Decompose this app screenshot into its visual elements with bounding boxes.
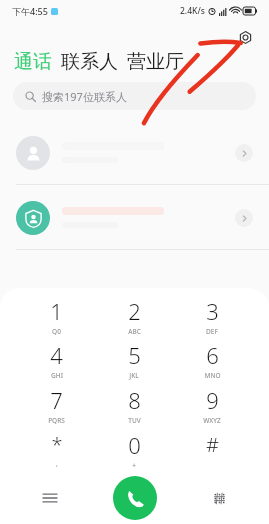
button[interactable]: Expand — [0, 185, 269, 250]
button[interactable]: 4 — [18, 338, 95, 382]
staticText: 联系人 — [61, 50, 118, 74]
button[interactable]: 0 — [95, 427, 173, 472]
staticText: 9 — [206, 385, 219, 415]
staticText: 搜索197位联系人 — [42, 89, 127, 104]
staticText: GHI — [51, 371, 63, 380]
staticText: 下午4:55 — [12, 5, 48, 17]
button[interactable]: 3 — [173, 294, 251, 338]
staticText: 4 — [50, 340, 63, 370]
button[interactable]: 9 — [173, 382, 251, 427]
button[interactable]: 通话 — [14, 48, 52, 76]
button[interactable]: 2 — [95, 294, 173, 338]
staticText: * — [51, 431, 63, 458]
button[interactable]: Keypad — [203, 482, 235, 514]
staticText: 2.4K/s — [180, 5, 205, 17]
button[interactable]: Menu — [34, 482, 66, 514]
staticText: 1 — [50, 296, 63, 326]
button[interactable]: # — [173, 427, 251, 472]
staticText: TUV — [128, 416, 141, 425]
button[interactable]: 8 — [95, 382, 173, 427]
staticText: , — [56, 459, 58, 468]
staticText: 通话 — [14, 50, 52, 74]
staticText: PQRS — [48, 416, 65, 425]
button[interactable]: Settings — [235, 27, 255, 47]
staticText: 3 — [206, 296, 219, 326]
button[interactable]: 6 — [173, 338, 251, 382]
staticText: 2 — [128, 296, 141, 326]
button[interactable]: Expand — [235, 144, 253, 162]
button[interactable]: * — [18, 427, 95, 472]
staticText: Q0 — [52, 327, 61, 336]
staticText: ABC — [128, 327, 141, 336]
staticText: 0 — [128, 430, 141, 460]
staticText: 8 — [128, 385, 141, 415]
staticText: JKL — [129, 371, 139, 380]
staticText: MNO — [204, 371, 221, 380]
staticText: + — [132, 461, 136, 470]
staticText: 7 — [50, 385, 63, 415]
staticText: 5 — [128, 340, 141, 370]
button[interactable]: 5 — [95, 338, 173, 382]
button[interactable]: Expand — [0, 120, 269, 185]
button[interactable]: 联系人 — [61, 48, 118, 76]
staticText: WXYZ — [203, 416, 221, 425]
button[interactable]: 营业厅 — [127, 48, 184, 76]
button[interactable]: Expand — [235, 209, 253, 227]
staticText: DEF — [206, 327, 218, 336]
button[interactable]: 1 — [18, 294, 95, 338]
button[interactable]: 搜索197位联系人 — [13, 82, 256, 110]
button[interactable]: 7 — [18, 382, 95, 427]
staticText: 营业厅 — [127, 50, 184, 74]
staticText: # — [206, 431, 219, 458]
staticText: 6 — [206, 340, 219, 370]
button[interactable]: Call — [113, 476, 157, 520]
